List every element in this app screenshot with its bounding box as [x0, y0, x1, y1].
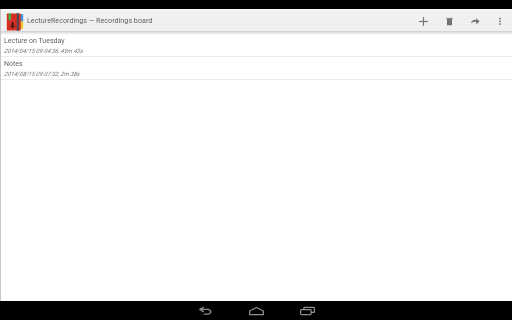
button[interactable]: Home	[231, 301, 282, 320]
staticText: Lecture on Tuesday	[4, 37, 65, 45]
button[interactable]: Add	[410, 11, 436, 31]
button[interactable]: More options	[488, 11, 512, 31]
button[interactable]: Lecture on Tuesday	[0, 34, 512, 57]
staticText: 2014/04/15 09:04:36, 49m 43s	[4, 48, 83, 55]
button[interactable]: Back	[180, 301, 231, 320]
staticText: 2014/08/15 09:07:32, 2m 38s	[4, 71, 80, 78]
staticText: Notes	[4, 60, 23, 68]
button[interactable]: Notes	[0, 57, 512, 80]
button[interactable]: Share	[462, 11, 488, 31]
staticText: LectureRecordings — Recordings board	[27, 16, 153, 24]
button[interactable]: Delete	[436, 11, 462, 31]
button[interactable]: Recents	[282, 301, 333, 320]
